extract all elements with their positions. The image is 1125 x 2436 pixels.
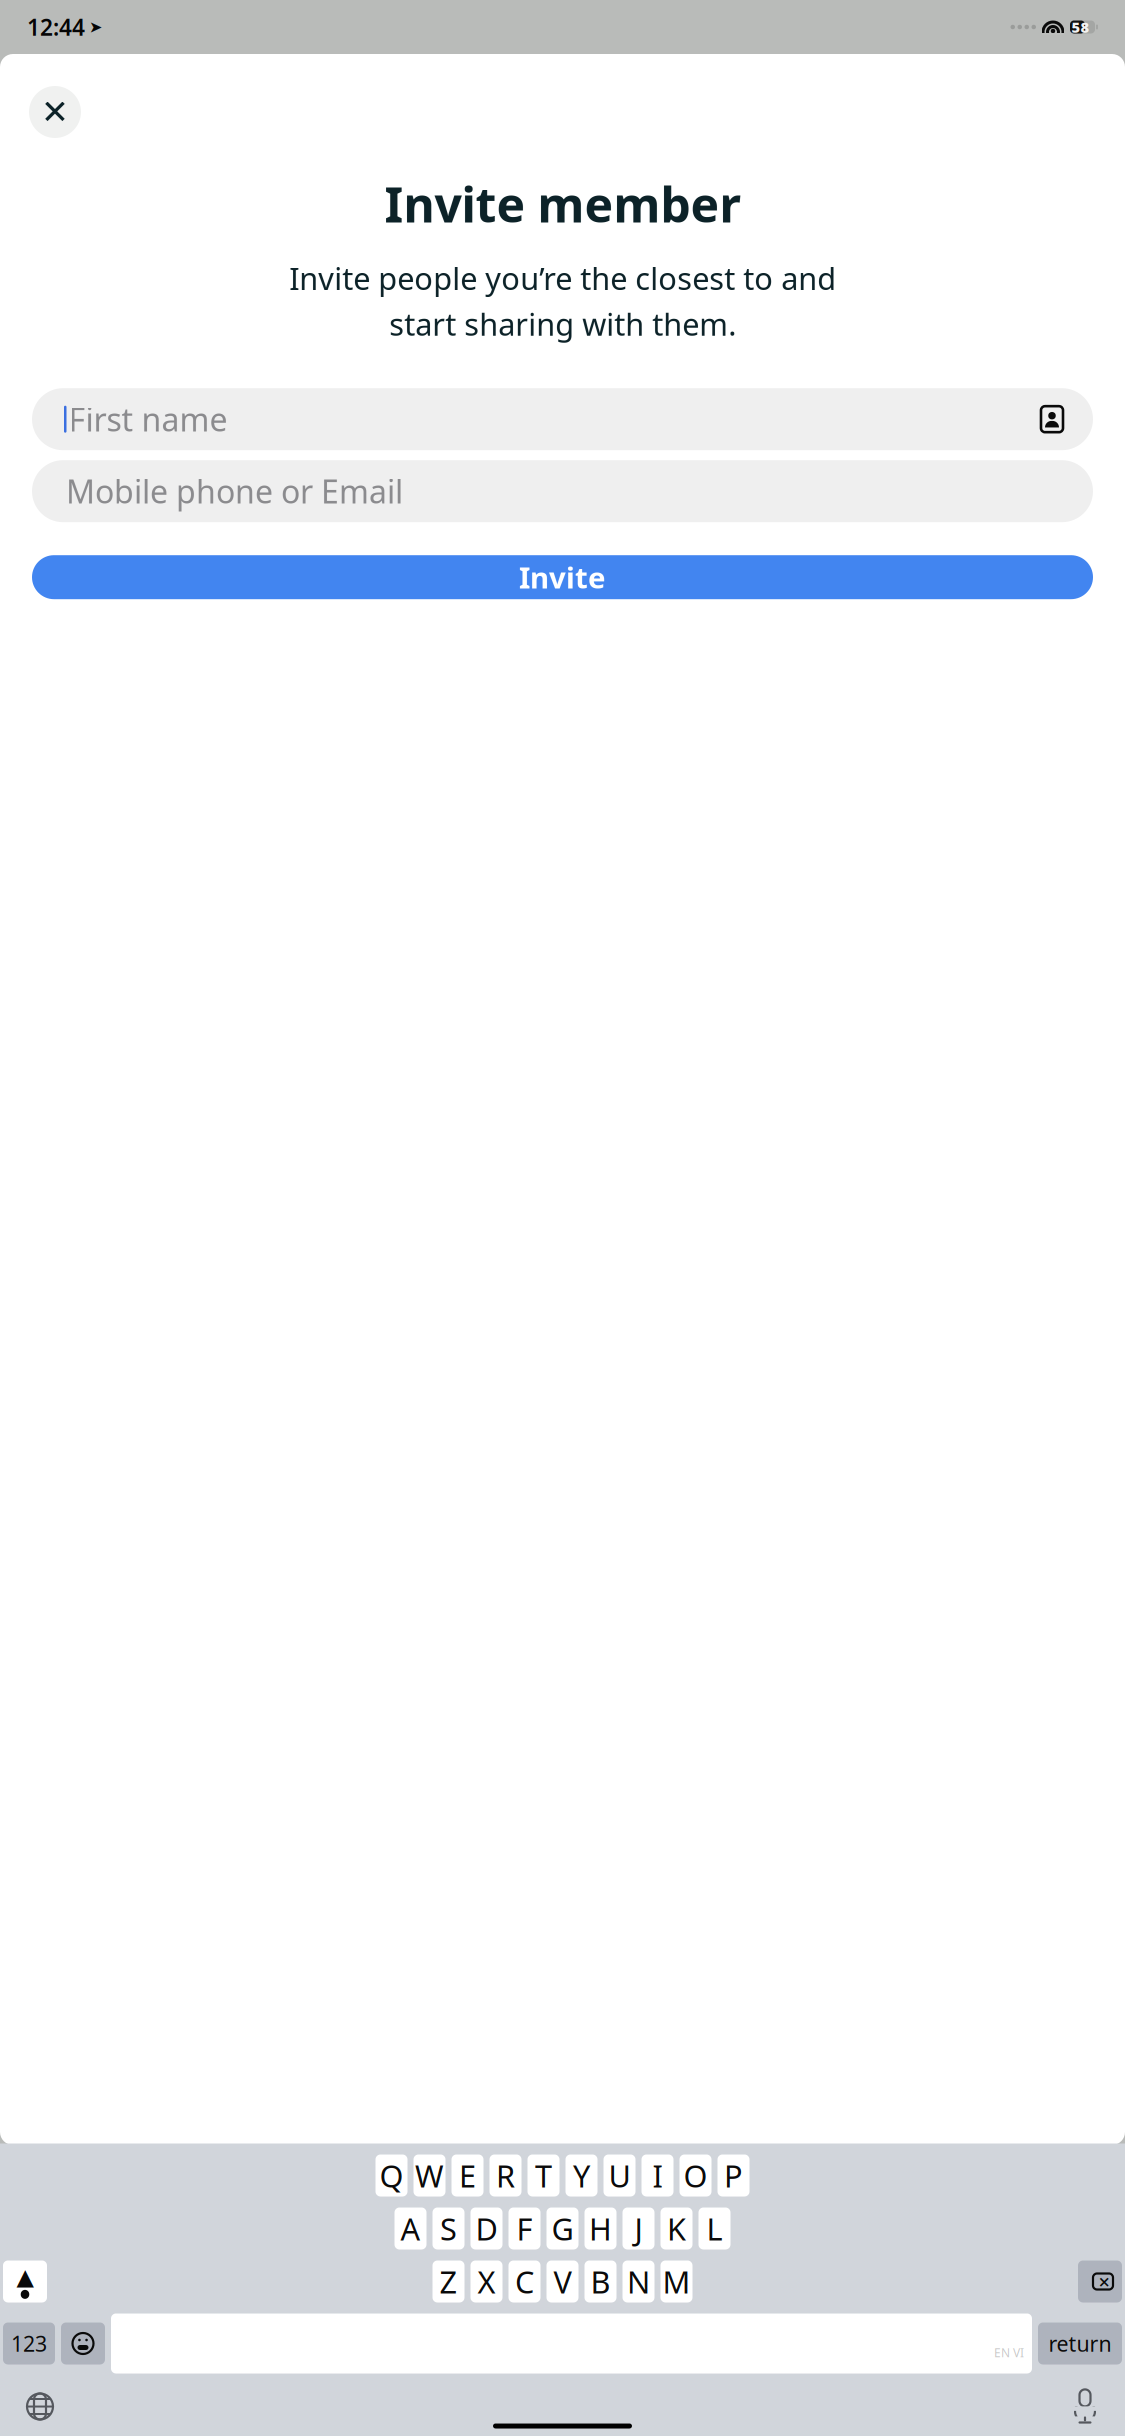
button[interactable]: C xyxy=(508,2260,540,2302)
staticText: D xyxy=(475,2208,497,2249)
staticText: B xyxy=(590,2261,610,2302)
staticText: × xyxy=(1098,2268,1109,2295)
staticText: R xyxy=(496,2155,515,2196)
staticText: Y xyxy=(573,2155,590,2196)
staticText: First name xyxy=(68,398,227,440)
staticText: ➤ xyxy=(89,18,102,36)
button[interactable]: Next keyboard xyxy=(27,2393,53,2419)
staticText: N xyxy=(627,2261,650,2302)
button[interactable]: J xyxy=(622,2207,654,2249)
button[interactable]: E xyxy=(451,2154,483,2196)
staticText: ✕ xyxy=(41,93,69,131)
button[interactable]: 123 xyxy=(3,2322,55,2364)
staticText: P xyxy=(724,2155,743,2196)
staticText: Invite people you’re the closest to and … xyxy=(289,258,836,344)
button[interactable]: Dictation xyxy=(1072,2389,1098,2423)
button[interactable]: I xyxy=(641,2154,673,2196)
button[interactable]: V xyxy=(546,2260,578,2302)
staticText: K xyxy=(667,2208,686,2249)
staticText: return xyxy=(1048,2329,1111,2358)
staticText: G xyxy=(551,2208,573,2249)
staticText: C xyxy=(515,2261,534,2302)
staticText: ▲ xyxy=(16,2264,33,2290)
staticText: 123 xyxy=(11,2329,47,2358)
button[interactable]: Y xyxy=(565,2154,597,2196)
button[interactable]: return xyxy=(1038,2322,1122,2364)
staticText: EN VI xyxy=(994,2344,1024,2360)
staticText: H xyxy=(589,2208,612,2249)
button[interactable]: space xyxy=(111,2313,1032,2373)
staticText: 12:44 xyxy=(27,12,85,42)
button[interactable]: R xyxy=(489,2154,521,2196)
button[interactable]: T xyxy=(527,2154,559,2196)
button[interactable]: N xyxy=(622,2260,654,2302)
button[interactable]: Invite xyxy=(32,555,1093,599)
staticText: E xyxy=(459,2155,476,2196)
staticText: F xyxy=(516,2208,532,2249)
button[interactable]: A xyxy=(394,2207,426,2249)
staticText: I xyxy=(652,2155,662,2196)
button[interactable]: Q xyxy=(375,2154,407,2196)
button[interactable]: Shift xyxy=(3,2260,47,2302)
button[interactable]: L xyxy=(698,2207,730,2249)
button[interactable]: Close xyxy=(29,86,81,138)
staticText: 58 xyxy=(1071,17,1089,37)
staticText: J xyxy=(634,2208,642,2249)
staticText: Invite xyxy=(519,558,606,597)
button[interactable]: H xyxy=(584,2207,616,2249)
staticText: Z xyxy=(439,2261,457,2302)
button[interactable]: F xyxy=(508,2207,540,2249)
button[interactable]: K xyxy=(660,2207,692,2249)
staticText: A xyxy=(400,2208,420,2249)
staticText: X xyxy=(477,2261,495,2302)
button[interactable]: G xyxy=(546,2207,578,2249)
button[interactable]: Z xyxy=(432,2260,464,2302)
staticText: Mobile phone or Email xyxy=(66,470,403,512)
staticText: Invite member xyxy=(384,172,740,236)
button[interactable]: O xyxy=(679,2154,711,2196)
button[interactable]: Delete xyxy=(1078,2260,1122,2302)
button[interactable]: B xyxy=(584,2260,616,2302)
staticText: O xyxy=(683,2155,707,2196)
staticText: V xyxy=(553,2261,571,2302)
staticText: L xyxy=(706,2208,722,2249)
button[interactable]: D xyxy=(470,2207,502,2249)
button[interactable]: M xyxy=(660,2260,692,2302)
button[interactable]: W xyxy=(413,2154,445,2196)
button[interactable]: First name xyxy=(32,388,1093,450)
staticText: W xyxy=(415,2155,444,2196)
button[interactable]: P xyxy=(717,2154,749,2196)
staticText: U xyxy=(608,2155,630,2196)
button[interactable]: Emoji xyxy=(61,2322,105,2364)
staticText: S xyxy=(440,2208,457,2249)
staticText: M xyxy=(662,2261,690,2302)
button[interactable]: S xyxy=(432,2207,464,2249)
button[interactable]: X xyxy=(470,2260,502,2302)
staticText: Q xyxy=(379,2155,403,2196)
button[interactable]: Mobile phone or Email xyxy=(32,460,1093,522)
button[interactable]: U xyxy=(603,2154,635,2196)
staticText: T xyxy=(535,2155,552,2196)
